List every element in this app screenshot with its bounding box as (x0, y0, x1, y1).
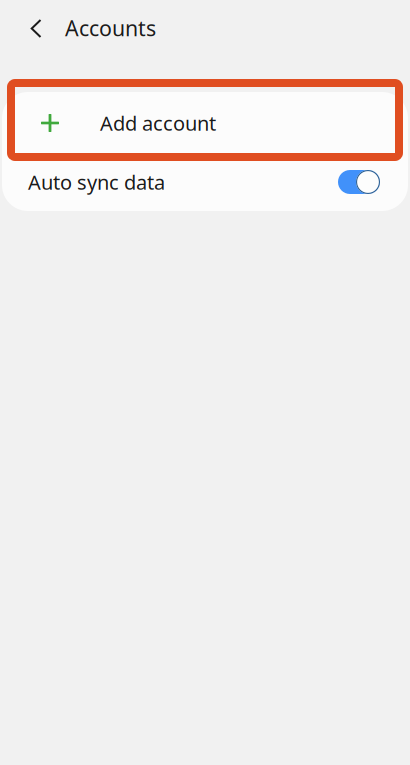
button[interactable]: Back (22, 6, 56, 50)
staticText: Auto sync data (28, 169, 165, 195)
staticText: Accounts (65, 14, 156, 42)
button[interactable]: Add account (2, 92, 408, 153)
staticText: Add account (100, 110, 216, 136)
button[interactable]: Auto sync data (2, 153, 408, 210)
